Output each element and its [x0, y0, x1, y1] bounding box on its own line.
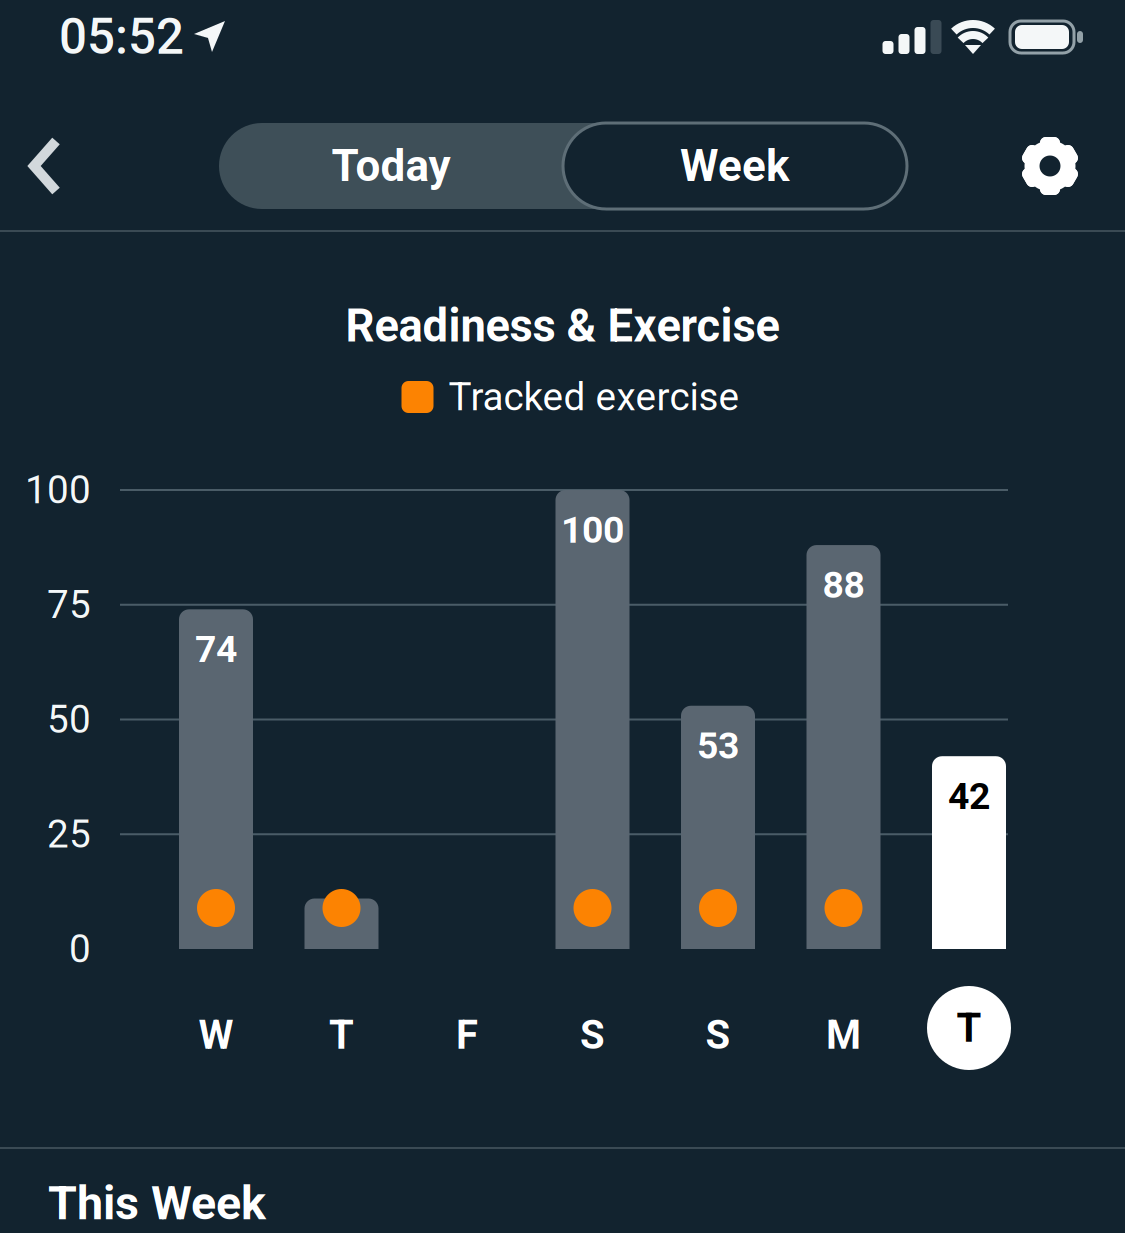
- button[interactable]: S 100: [530, 460, 655, 1080]
- staticText: 05:52: [59, 8, 184, 66]
- staticText: S: [705, 1012, 730, 1058]
- staticText: 88: [822, 563, 864, 607]
- staticText: 50: [47, 697, 91, 742]
- staticText: S: [580, 1012, 605, 1058]
- staticText: T: [329, 1012, 354, 1058]
- button[interactable]: Settings: [1002, 118, 1098, 214]
- staticText: This Week: [48, 1176, 266, 1231]
- button[interactable]: F 0: [404, 460, 530, 1080]
- staticText: Readiness & Exercise: [345, 299, 779, 352]
- staticText: T: [956, 1005, 981, 1051]
- staticText: 53: [697, 724, 739, 768]
- staticText: F: [456, 1012, 478, 1058]
- staticText: M: [826, 1012, 861, 1058]
- button[interactable]: Week: [563, 123, 907, 209]
- button[interactable]: T 11: [279, 460, 404, 1080]
- button[interactable]: M 88: [781, 460, 906, 1080]
- button[interactable]: T 42: [906, 460, 1032, 1080]
- button[interactable]: W 74: [153, 460, 279, 1080]
- staticText: Week: [680, 140, 790, 192]
- staticText: W: [198, 1012, 233, 1058]
- staticText: Today: [331, 140, 450, 192]
- staticText: 100: [25, 467, 91, 513]
- staticText: 100: [561, 508, 624, 552]
- staticText: 74: [195, 627, 237, 671]
- staticText: 75: [47, 582, 91, 627]
- staticText: 42: [948, 774, 990, 818]
- staticText: 0: [69, 926, 91, 972]
- button[interactable]: S 53: [655, 460, 781, 1080]
- button[interactable]: Today: [219, 123, 563, 209]
- staticText: 25: [47, 812, 91, 857]
- button[interactable]: Back: [0, 118, 95, 214]
- staticText: Tracked exercise: [448, 374, 739, 420]
